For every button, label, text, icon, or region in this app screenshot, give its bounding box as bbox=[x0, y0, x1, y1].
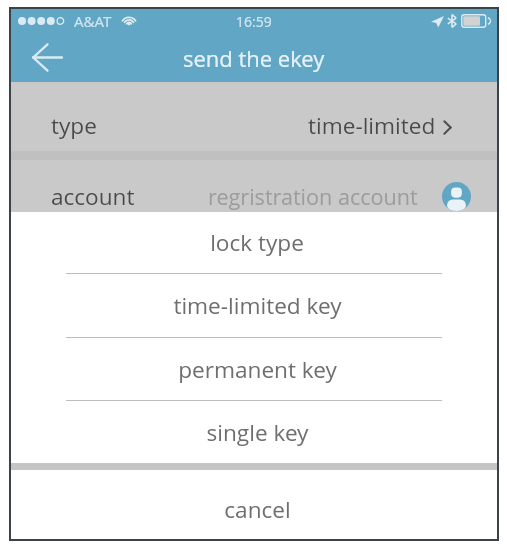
button[interactable]: time-limited key bbox=[11, 274, 497, 337]
button[interactable]: account bbox=[11, 160, 497, 213]
button[interactable]: Back bbox=[20, 34, 74, 80]
staticText: time-limited key bbox=[173, 290, 342, 321]
staticText: 16:59 bbox=[236, 12, 272, 31]
staticText: account bbox=[51, 181, 135, 212]
button[interactable]: lock type bbox=[11, 212, 497, 273]
staticText: type bbox=[51, 110, 97, 141]
button[interactable]: permanent key bbox=[11, 338, 497, 400]
staticText: regristration account bbox=[208, 182, 418, 211]
staticText: lock type bbox=[210, 227, 304, 258]
staticText: permanent key bbox=[178, 354, 337, 385]
staticText: A&AT bbox=[74, 11, 112, 31]
button[interactable]: cancel bbox=[11, 470, 497, 539]
button[interactable]: type bbox=[11, 82, 497, 151]
staticText: single key bbox=[206, 417, 309, 448]
staticText: cancel bbox=[224, 494, 291, 525]
staticText: time-limited bbox=[308, 110, 436, 141]
button[interactable]: single key bbox=[11, 401, 497, 463]
staticText: send the ekey bbox=[183, 43, 325, 73]
